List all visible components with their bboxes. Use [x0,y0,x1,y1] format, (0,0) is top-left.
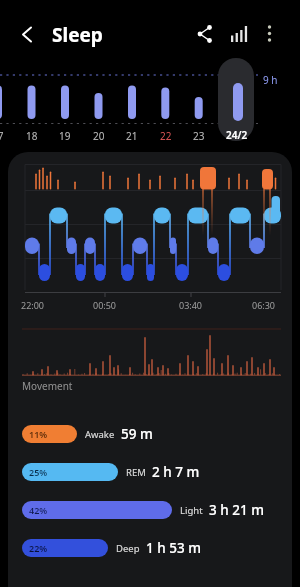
staticText: REM [126,466,146,479]
staticText: 42% [29,504,48,516]
staticText: 21 [126,129,138,143]
staticText: 9 h [263,73,278,87]
staticText: 23 [193,129,205,143]
button[interactable] [116,60,148,144]
staticText: 1 h 53 m [146,539,201,557]
staticText: 19 [59,129,71,143]
button[interactable]: 22% [22,538,201,558]
staticText: 17 [0,129,4,143]
staticText: 03:40 [179,299,203,311]
button[interactable] [226,20,254,48]
button[interactable] [0,60,14,144]
staticText: 3 h 21 m [209,501,264,519]
button[interactable] [14,20,42,48]
button[interactable]: 25% [22,462,200,482]
staticText: Awake [85,428,115,441]
button[interactable] [49,60,81,144]
staticText: 06:30 [252,299,276,311]
button[interactable] [182,60,214,144]
button[interactable]: 42% [22,500,264,520]
staticText: 22:00 [21,299,45,311]
staticText: 24/2 [226,128,248,142]
button[interactable] [15,60,47,144]
staticText: 00:50 [93,299,117,311]
staticText: 2 h 7 m [152,463,200,481]
staticText: Movement [22,379,73,393]
button[interactable] [258,20,286,48]
staticText: Light [180,504,203,517]
staticText: 22 [160,129,172,143]
staticText: Sleep [52,22,103,48]
staticText: 59 m [121,425,153,443]
staticText: 11% [29,428,48,440]
button[interactable] [220,60,252,144]
button[interactable] [149,60,181,144]
button[interactable] [82,60,114,144]
staticText: 20 [93,129,105,143]
button[interactable] [192,20,220,48]
staticText: 25% [29,466,48,478]
button[interactable]: 11% [22,424,153,444]
staticText: 22% [29,542,48,554]
staticText: 18 [26,129,38,143]
staticText: Deep [116,542,140,555]
